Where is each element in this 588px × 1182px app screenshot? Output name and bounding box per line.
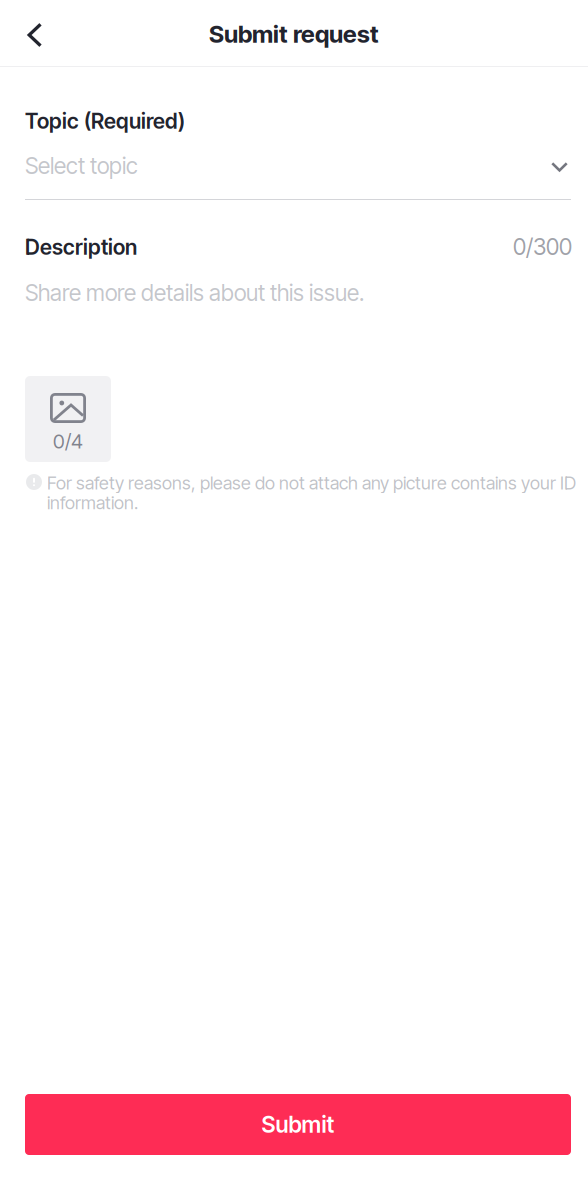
- staticText: Description: [25, 234, 137, 260]
- staticText: Topic (Required): [25, 108, 185, 134]
- button[interactable]: Submit: [25, 1094, 571, 1155]
- staticText: Submit: [261, 1111, 334, 1138]
- staticText: 0/4: [53, 429, 83, 453]
- staticText: Select topic: [25, 152, 138, 179]
- staticText: Share more details about this issue.: [25, 279, 364, 306]
- staticText: 0/300: [513, 233, 572, 260]
- button[interactable]: Back: [7, 7, 63, 63]
- staticText: For safety reasons, please do not attach…: [47, 472, 576, 514]
- button[interactable]: Select topic: [25, 147, 571, 199]
- button[interactable]: Add photo, 0 of 4: [25, 376, 111, 462]
- staticText: Submit request: [209, 19, 379, 48]
